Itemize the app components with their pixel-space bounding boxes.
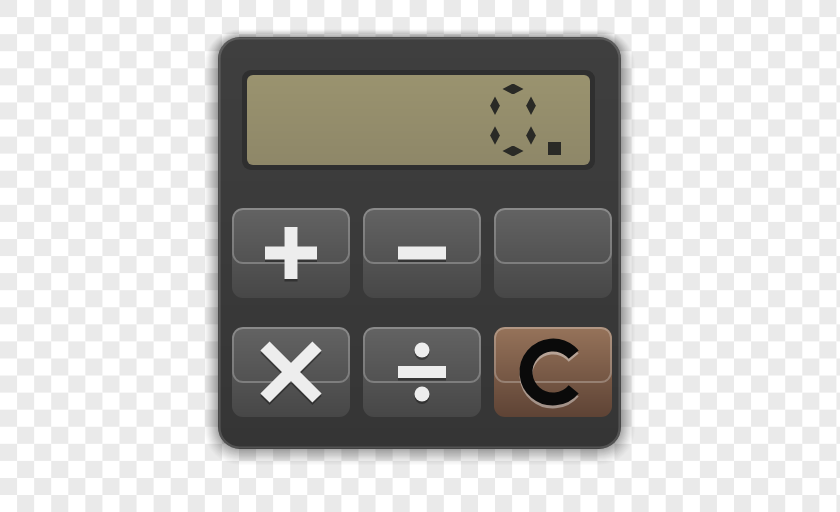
button[interactable]: ÷ [363,327,481,417]
button[interactable]: x [232,327,350,417]
button[interactable]: = [494,208,612,298]
button[interactable]: + [232,208,350,298]
button[interactable]: C [494,327,612,417]
button[interactable]: − [363,208,481,298]
button[interactable] [242,70,595,170]
